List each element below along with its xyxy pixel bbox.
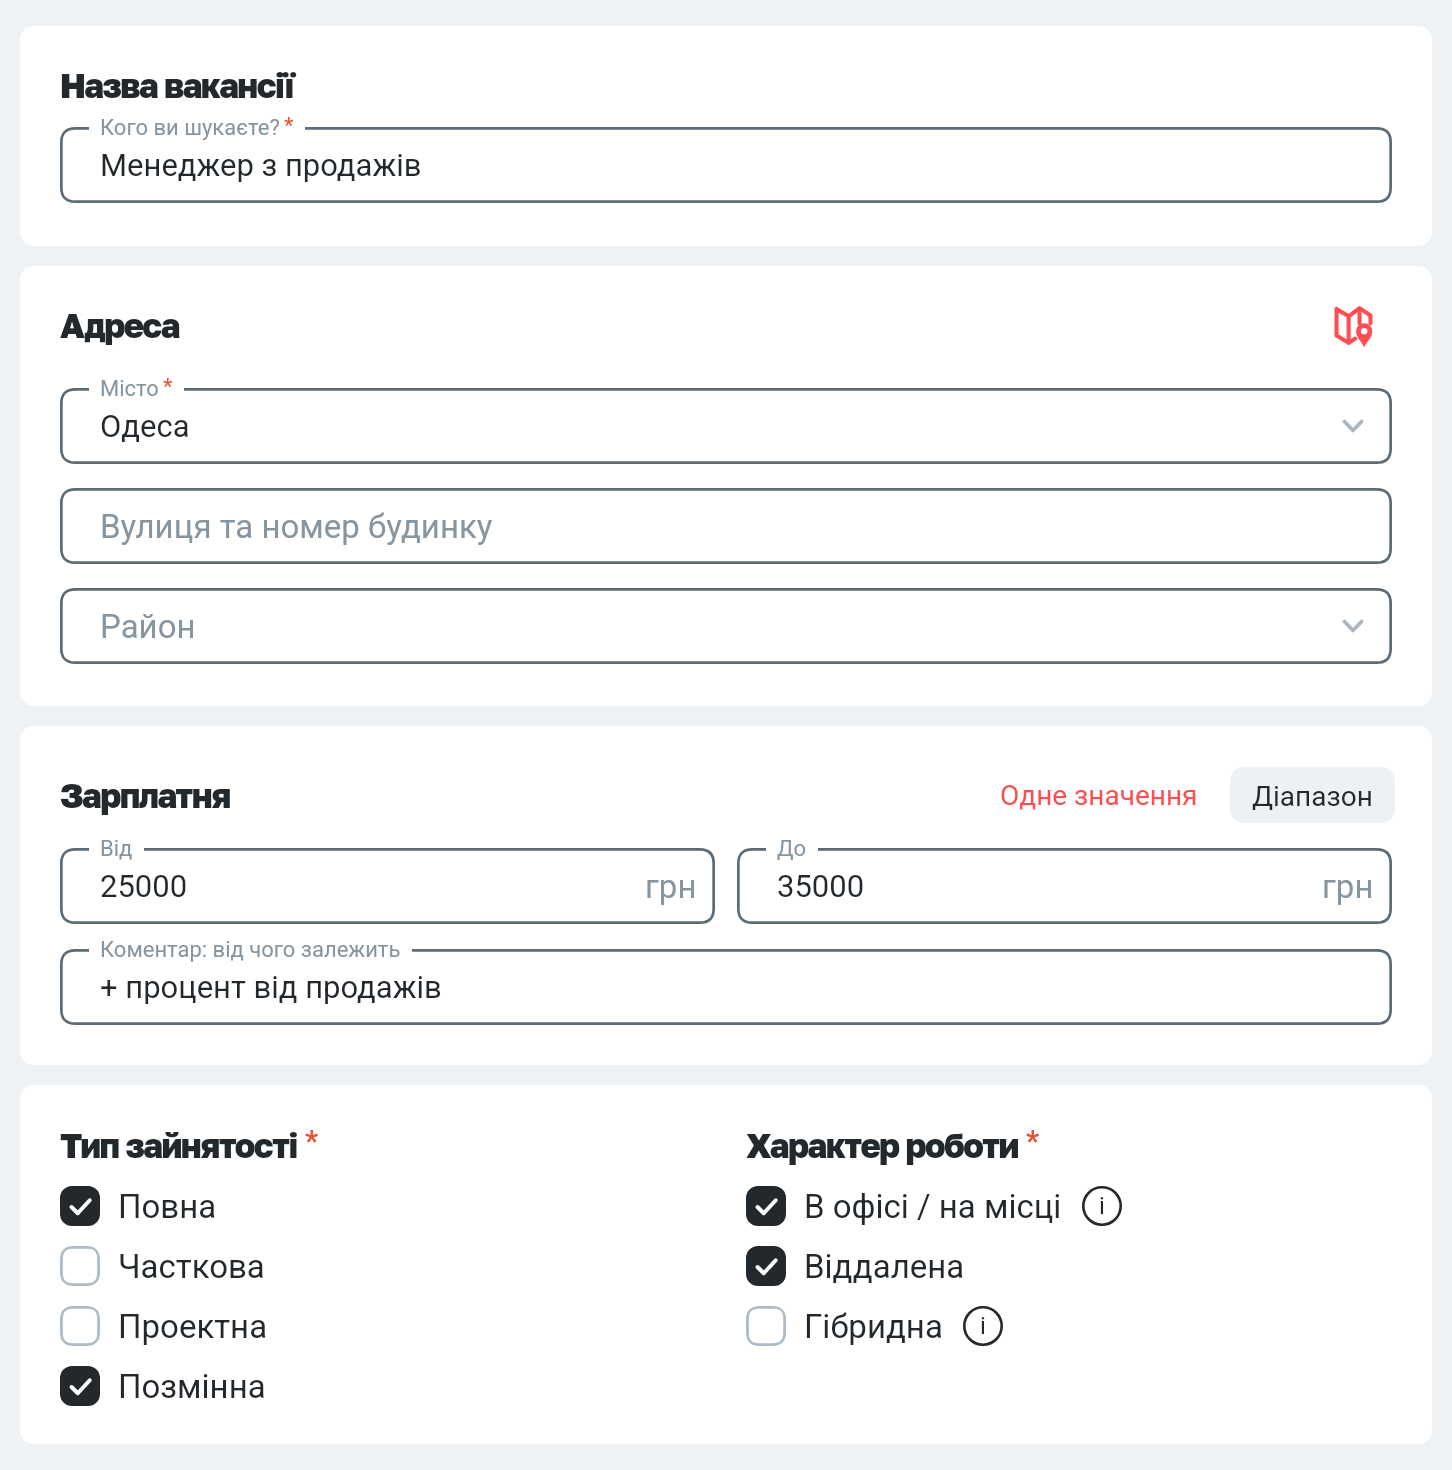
button[interactable]: Проектна [60,1296,268,1356]
staticText: Адреса [60,305,179,346]
staticText: i [980,1312,986,1340]
staticText: грн [645,867,697,906]
button[interactable]: Діапазон [1230,767,1395,823]
staticText: Одеса [100,408,190,444]
staticText: Місто [100,376,159,402]
button[interactable]: Обрати на карті [1328,300,1378,350]
staticText: Характер роботи [746,1125,1018,1166]
button[interactable]: Одне значення [992,769,1206,822]
staticText: Проектна [118,1307,268,1346]
staticText: Одне значення [1000,779,1198,812]
staticText: * [305,1124,319,1158]
button[interactable]: Одеса [60,388,1392,464]
staticText: грн [1322,867,1374,906]
staticText: Гібридна [804,1307,943,1346]
button[interactable]: Інформація [1082,1186,1122,1226]
staticText: i [1099,1192,1105,1220]
staticText: До [777,836,807,862]
staticText: В офісі / на місці [804,1187,1062,1226]
staticText: Район [100,607,196,646]
staticText: Часткова [118,1247,265,1286]
button[interactable]: Повна [60,1176,217,1236]
staticText: Менеджер з продажів [100,147,422,183]
staticText: * [1026,1124,1040,1158]
staticText: Від [100,836,133,862]
staticText: Повна [118,1187,217,1226]
staticText: Зарплатня [60,775,230,816]
button[interactable]: В офісі / на місці [746,1176,1122,1236]
button[interactable]: Вулиця та номер будинку [60,488,1392,564]
button[interactable]: Часткова [60,1236,265,1296]
button[interactable]: Район [60,588,1392,664]
button[interactable]: Віддалена [746,1236,965,1296]
staticText: Віддалена [804,1247,965,1286]
button[interactable]: 35000 [737,848,1392,924]
staticText: Кого ви шукаєте? [100,115,280,141]
button[interactable]: Гібридна [746,1296,1003,1356]
button[interactable]: Менеджер з продажів [60,127,1392,203]
staticText: Тип зайнятості [60,1125,297,1166]
staticText: Вулиця та номер будинку [100,507,493,546]
button[interactable]: Позмінна [60,1356,266,1416]
staticText: Позмінна [118,1367,266,1406]
staticText: 35000 [777,868,865,904]
staticText: Коментар: від чого залежить [100,937,401,963]
staticText: * [284,113,294,139]
staticText: + процент від продажів [100,969,442,1005]
staticText: Назва вакансії [60,65,293,106]
button[interactable]: 25000 [60,848,715,924]
button[interactable]: Інформація [963,1306,1003,1346]
staticText: Діапазон [1252,780,1373,810]
staticText: 25000 [100,868,188,904]
staticText: * [163,374,173,400]
button[interactable]: + процент від продажів [60,949,1392,1025]
